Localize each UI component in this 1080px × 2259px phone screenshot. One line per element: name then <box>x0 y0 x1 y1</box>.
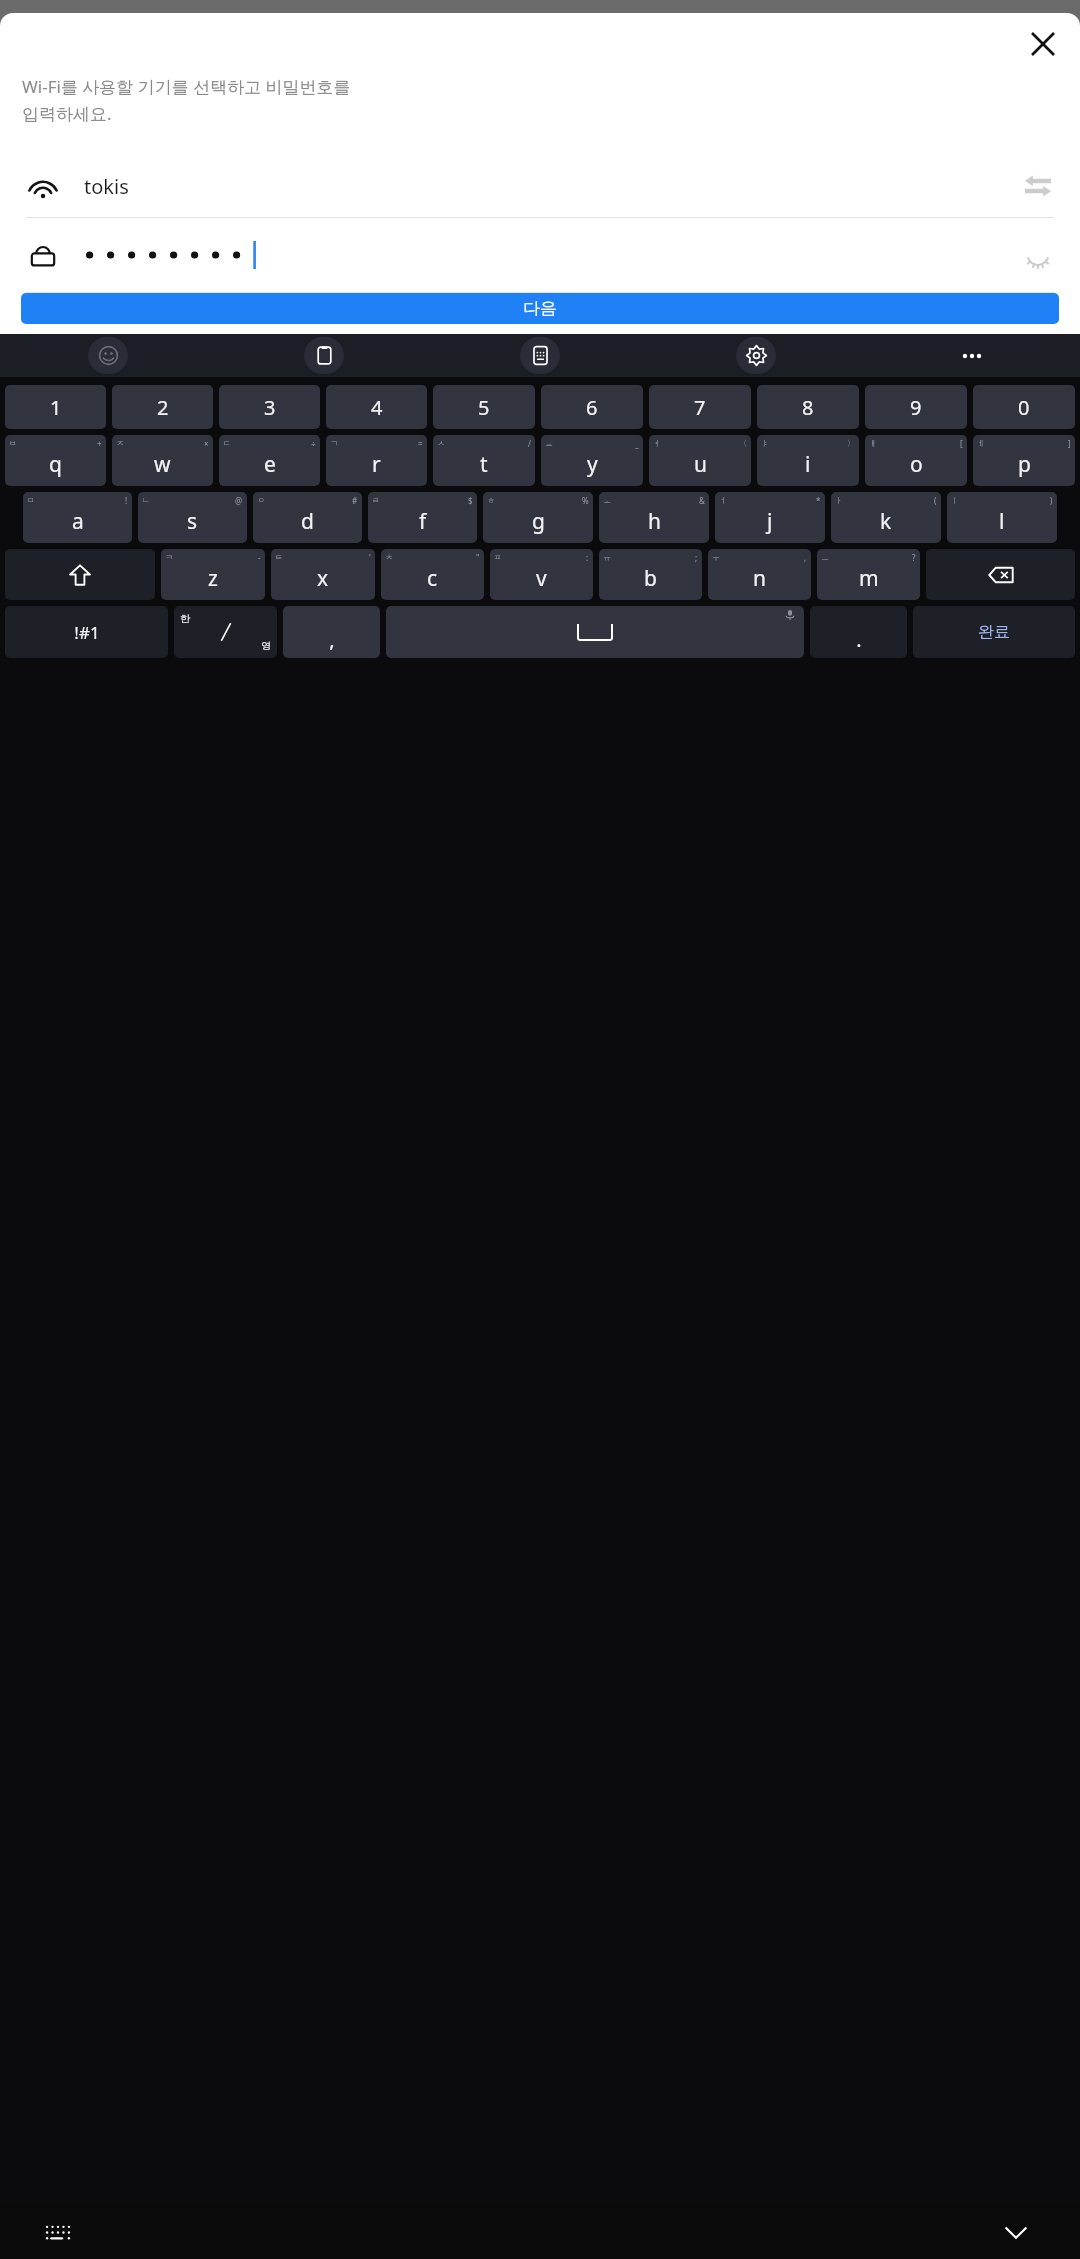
staticText: ㅁ <box>27 495 35 505</box>
button[interactable]: ㅛ <box>541 435 643 486</box>
button[interactable]: . <box>810 606 907 658</box>
button[interactable]: 5 <box>433 385 535 429</box>
button[interactable]: 네트워크 전환 <box>1018 166 1058 206</box>
staticText: b <box>644 564 657 593</box>
staticText: ' <box>369 552 371 563</box>
staticText: , <box>804 552 807 563</box>
button[interactable]: ㅋ <box>161 549 265 600</box>
button[interactable]: ㅑ <box>757 435 859 486</box>
button[interactable]: 스페이스 <box>386 606 804 658</box>
staticText: f <box>419 507 427 536</box>
button[interactable]: ㄹ <box>368 492 477 543</box>
staticText: h <box>648 507 661 536</box>
button[interactable]: 클립보드 <box>304 337 344 374</box>
button[interactable]: ㅁ <box>23 492 132 543</box>
staticText: ㅊ <box>385 552 393 562</box>
staticText: j <box>767 507 773 536</box>
staticText: w <box>154 450 171 479</box>
staticText: x <box>317 564 329 593</box>
staticText: y <box>587 450 598 479</box>
button[interactable]: 1 <box>5 385 106 429</box>
staticText: Wi-Fi를 사용할 기기를 선택하고 비밀번호를 입력하세요. <box>22 75 351 125</box>
button[interactable]: ㅎ <box>483 492 593 543</box>
staticText: ㅈ <box>116 438 124 448</box>
staticText: k <box>880 507 892 536</box>
staticText: # <box>352 495 358 506</box>
staticText: ㅍ <box>494 552 502 562</box>
button[interactable]: tokis <box>0 155 1080 217</box>
staticText: " <box>476 552 480 563</box>
button[interactable]: ㅂ <box>5 435 106 486</box>
button[interactable]: ㄷ <box>219 435 320 486</box>
button[interactable]: 3 <box>219 385 320 429</box>
button[interactable]: ㅍ <box>490 549 593 600</box>
button[interactable]: 완료 <box>913 606 1075 658</box>
button[interactable]: ㅏ <box>831 492 941 543</box>
button[interactable]: ㅔ <box>973 435 1075 486</box>
button[interactable]: 0 <box>973 385 1075 429</box>
button[interactable]: 한영 전환 <box>174 606 277 658</box>
button[interactable]: ㅜ <box>708 549 811 600</box>
staticText: 3 <box>264 394 276 421</box>
staticText: / <box>528 438 531 449</box>
button[interactable]: ㅡ <box>817 549 920 600</box>
button[interactable]: 설정 <box>736 337 776 374</box>
staticText: d <box>301 507 314 536</box>
button[interactable]: 7 <box>649 385 751 429</box>
button[interactable]: ㅌ <box>271 549 375 600</box>
staticText: ㄷ <box>223 438 231 448</box>
staticText: ) <box>1050 495 1053 506</box>
button[interactable]: 지우기 <box>926 549 1075 600</box>
button[interactable]: 2 <box>112 385 213 429</box>
button[interactable]: Shift <box>5 549 155 600</box>
staticText: ㅇ <box>257 495 265 505</box>
button[interactable]: 다음 <box>21 293 1059 324</box>
button[interactable]: ㅈ <box>112 435 213 486</box>
button[interactable]: ㅣ <box>947 492 1057 543</box>
staticText: 6 <box>586 394 598 421</box>
staticText: @ <box>235 495 243 506</box>
button[interactable]: 비밀번호 표시 <box>1018 235 1058 275</box>
button[interactable]: 4 <box>326 385 427 429</box>
staticText: ㅐ <box>869 438 877 448</box>
staticText: % <box>582 495 589 506</box>
staticText: * <box>816 495 821 506</box>
button[interactable]: 키보드 닫기 <box>992 2208 1040 2256</box>
staticText: ㄱ <box>330 438 338 448</box>
button[interactable]: ㅓ <box>715 492 825 543</box>
button[interactable]: ㅠ <box>599 549 702 600</box>
staticText: ㅌ <box>275 552 283 562</box>
button[interactable]: ㅇ <box>253 492 362 543</box>
staticText: u <box>694 450 707 479</box>
staticText: - <box>258 552 261 563</box>
button[interactable]: 키보드 설정 <box>520 337 560 374</box>
button[interactable]: 이모티콘 <box>88 337 128 374</box>
button[interactable]: 키보드 변경 <box>36 2210 80 2254</box>
staticText: g <box>532 507 545 536</box>
staticText: ㅎ <box>487 495 495 505</box>
button[interactable]: 9 <box>865 385 967 429</box>
button[interactable]: 6 <box>541 385 643 429</box>
button[interactable]: ㄴ <box>138 492 247 543</box>
staticText: 다음 <box>523 298 557 319</box>
button[interactable]: !#1 <box>5 606 168 658</box>
staticText: ㅂ <box>9 438 17 448</box>
staticText: 7 <box>694 394 706 421</box>
staticText: c <box>427 564 438 593</box>
staticText: × <box>204 438 209 449</box>
button[interactable]: ㅗ <box>599 492 709 543</box>
button[interactable]: ㅕ <box>649 435 751 486</box>
button[interactable]: ㄱ <box>326 435 427 486</box>
button[interactable]: 비밀번호 표시 <box>0 218 1080 292</box>
staticText: 4 <box>371 394 383 421</box>
button[interactable]: ㅐ <box>865 435 967 486</box>
staticText: + <box>97 438 102 449</box>
staticText: . <box>856 626 862 653</box>
button[interactable]: 더보기 <box>952 336 992 376</box>
button[interactable]: , <box>283 606 380 658</box>
button[interactable]: ㅅ <box>433 435 535 486</box>
staticText: ! <box>125 495 128 506</box>
button[interactable]: 8 <box>757 385 859 429</box>
button[interactable]: ㅊ <box>381 549 484 600</box>
button[interactable]: 닫기 <box>1020 21 1066 67</box>
